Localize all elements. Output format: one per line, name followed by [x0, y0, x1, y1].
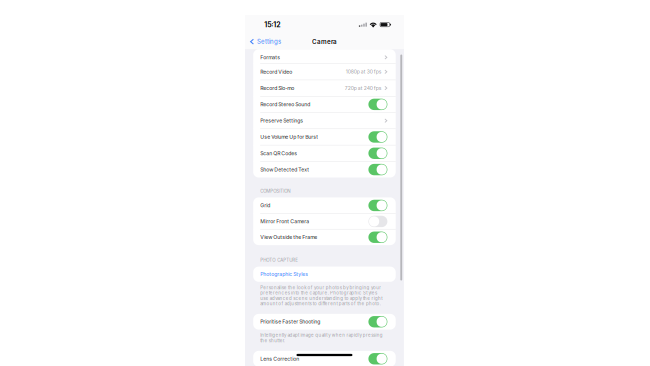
- button[interactable]: Show Detected Text: [253, 162, 396, 177]
- staticText: Formats: [260, 54, 280, 60]
- staticText: Use Volume Up for Burst: [260, 134, 318, 140]
- staticText: Grid: [260, 202, 270, 208]
- staticText: Personalise the look of your photos by b…: [260, 285, 382, 306]
- staticText: Mirror Front Camera: [260, 218, 309, 224]
- button[interactable]: Formats: [253, 49, 396, 63]
- button[interactable]: Record Slo-mo: [253, 80, 396, 96]
- button[interactable]: Scan QR Codes: [253, 145, 396, 161]
- staticText: 15:12: [264, 20, 280, 29]
- staticText: 720p at 240 fps: [345, 85, 382, 91]
- staticText: Prioritise Faster Shooting: [260, 319, 320, 325]
- staticText: COMPOSITION: [260, 188, 290, 194]
- staticText: 1080p at 30 fps: [346, 69, 382, 75]
- staticText: Camera: [312, 38, 337, 45]
- staticText: Record Video: [260, 69, 292, 75]
- staticText: Settings: [257, 38, 281, 45]
- button[interactable]: Prioritise Faster Shooting: [253, 314, 396, 330]
- button[interactable]: Use Volume Up for Burst: [253, 129, 396, 145]
- staticText: Lens Correction: [260, 356, 299, 362]
- button[interactable]: View Outside the Frame: [253, 229, 396, 245]
- button[interactable]: Photographic Styles: [253, 267, 396, 282]
- button[interactable]: Record Stereo Sound: [253, 96, 396, 112]
- staticText: Intelligently adapt image quality when r…: [260, 333, 383, 343]
- staticText: Show Detected Text: [260, 166, 309, 173]
- button[interactable]: Grid: [253, 197, 396, 213]
- button[interactable]: Mirror Front Camera: [253, 214, 396, 229]
- staticText: View Outside the Frame: [260, 234, 317, 240]
- staticText: Scan QR Codes: [260, 150, 297, 156]
- button[interactable]: Record Video: [253, 64, 396, 80]
- staticText: Record Slo-mo: [260, 85, 294, 91]
- staticText: PHOTO CAPTURE: [260, 257, 298, 263]
- button[interactable]: Preserve Settings: [253, 113, 396, 129]
- button[interactable]: Settings: [245, 34, 281, 49]
- staticText: Preserve Settings: [260, 118, 303, 124]
- staticText: Record Stereo Sound: [260, 101, 310, 107]
- button[interactable]: Lens Correction: [253, 351, 396, 366]
- staticText: Photographic Styles: [260, 271, 308, 277]
